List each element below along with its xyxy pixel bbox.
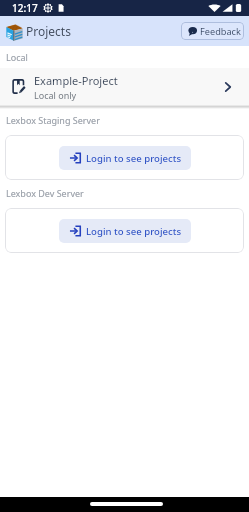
button[interactable]: Feedback — [181, 22, 244, 40]
staticText: 12:17 — [12, 1, 38, 15]
staticText: Lexbox Dev Server — [6, 187, 84, 199]
staticText: Lexbox Staging Server — [6, 114, 100, 126]
button[interactable]: Example-Project — [0, 68, 249, 105]
staticText: Feedback — [200, 25, 241, 38]
other: Open project — [225, 82, 231, 92]
staticText: Projects — [26, 23, 71, 39]
staticText: Example-Project — [34, 73, 118, 88]
staticText: Local only — [34, 89, 77, 101]
staticText: Local — [6, 51, 28, 63]
button[interactable]: Login to see projects — [59, 146, 191, 170]
staticText: Login to see projects — [86, 225, 182, 238]
staticText: Login to see projects — [86, 152, 182, 165]
button[interactable]: Login to see projects — [59, 219, 191, 243]
